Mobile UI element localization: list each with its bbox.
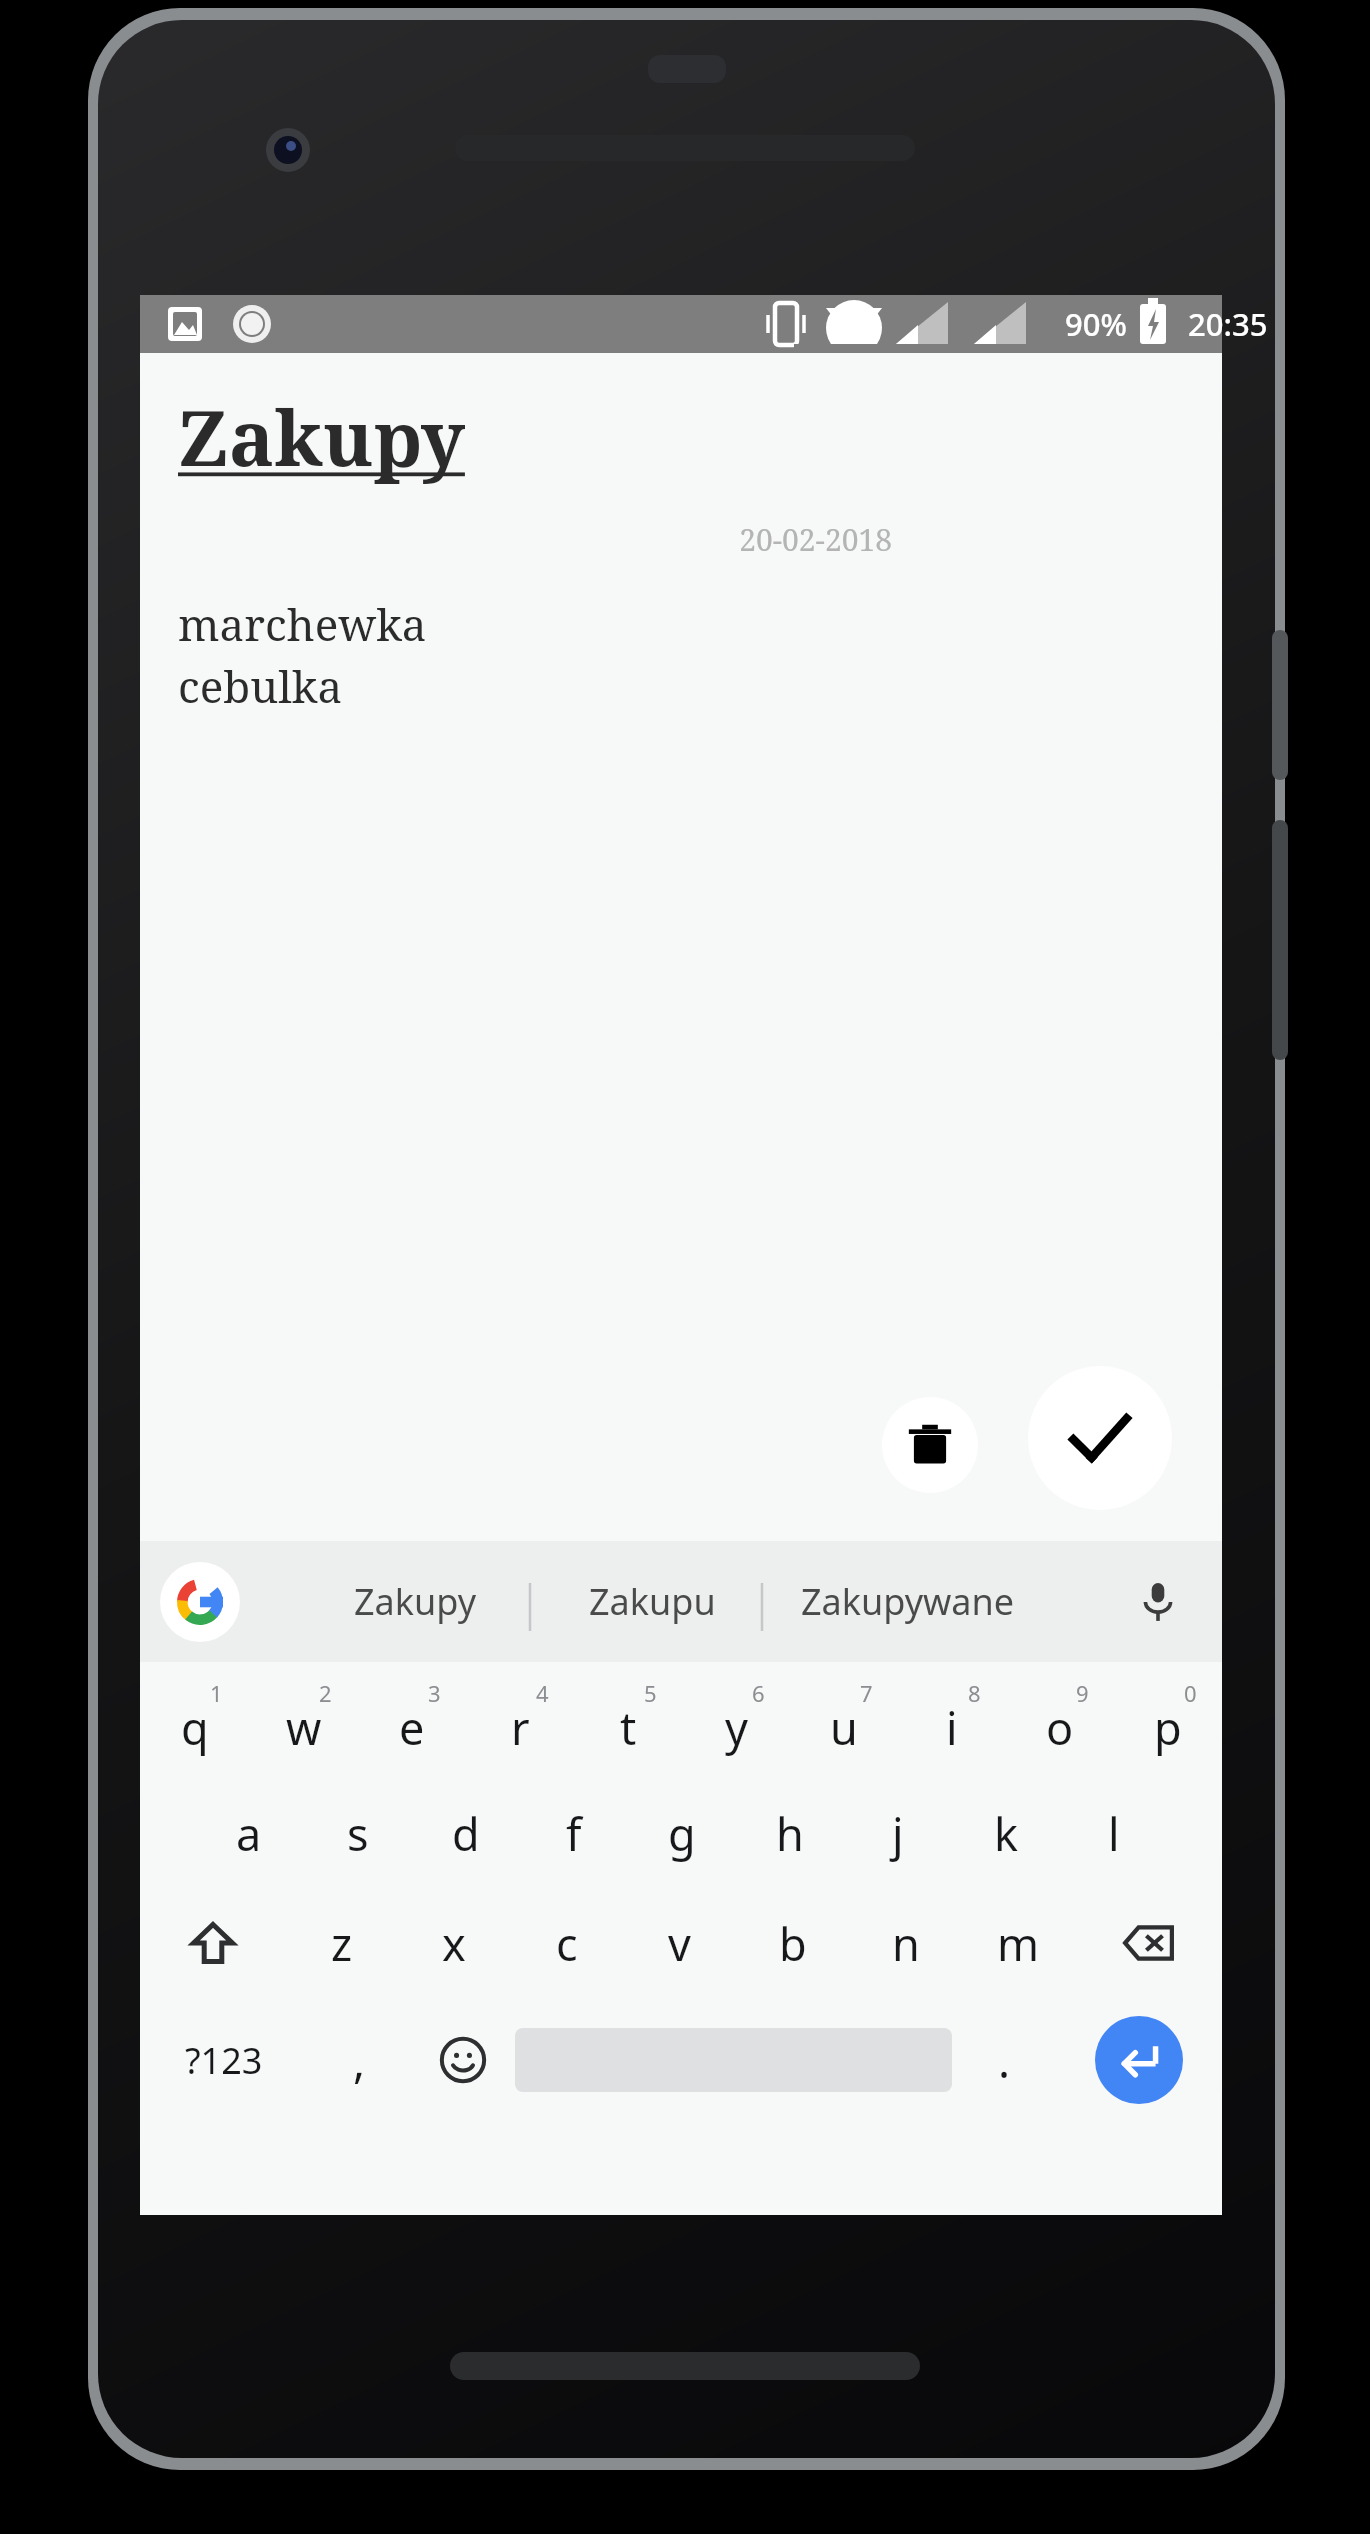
- button[interactable]: .: [952, 1998, 1056, 2122]
- button[interactable]: s: [303, 1778, 412, 1888]
- staticText: v: [668, 1913, 691, 1974]
- staticText: ,: [353, 2030, 366, 2091]
- staticText: 8: [968, 1678, 981, 1708]
- button[interactable]: Backspace: [1075, 1888, 1222, 1998]
- staticText: 5: [644, 1678, 657, 1708]
- staticText: h: [776, 1803, 804, 1864]
- staticText: ?123: [185, 2036, 263, 2085]
- staticText: Zakupywane: [801, 1577, 1015, 1626]
- staticText: y: [725, 1697, 748, 1758]
- staticText: 9: [1076, 1678, 1089, 1708]
- staticText: o: [1046, 1697, 1074, 1758]
- button[interactable]: y: [682, 1668, 790, 1778]
- staticText: d: [452, 1803, 480, 1864]
- staticText: 6: [752, 1678, 765, 1708]
- staticText: b: [779, 1913, 807, 1974]
- button[interactable]: Shift: [140, 1888, 286, 1998]
- staticText: l: [1108, 1803, 1120, 1864]
- button[interactable]: h: [736, 1778, 844, 1888]
- staticText: j: [892, 1803, 904, 1864]
- staticText: x: [442, 1913, 466, 1974]
- button[interactable]: n: [849, 1888, 962, 1998]
- staticText: f: [566, 1803, 582, 1864]
- button[interactable]: a: [194, 1778, 303, 1888]
- button[interactable]: e: [358, 1668, 466, 1778]
- button[interactable]: Enter: [1095, 2016, 1183, 2104]
- button[interactable]: r: [466, 1668, 574, 1778]
- button[interactable]: j: [844, 1778, 952, 1888]
- staticText: p: [1154, 1697, 1182, 1758]
- button[interactable]: t: [574, 1668, 682, 1778]
- button[interactable]: v: [623, 1888, 736, 1998]
- button[interactable]: d: [412, 1778, 520, 1888]
- button[interactable]: i: [898, 1668, 1006, 1778]
- button[interactable]: c: [510, 1888, 623, 1998]
- staticText: a: [236, 1803, 262, 1864]
- staticText: e: [399, 1697, 425, 1758]
- button[interactable]: z: [286, 1888, 398, 1998]
- staticText: r: [511, 1697, 530, 1758]
- button[interactable]: w: [249, 1668, 358, 1778]
- staticText: 2: [319, 1678, 332, 1708]
- button[interactable]: Google: [160, 1562, 240, 1642]
- staticText: 1: [210, 1678, 223, 1708]
- staticText: 3: [428, 1678, 441, 1708]
- staticText: 7: [860, 1678, 873, 1708]
- staticText: 90%: [1065, 303, 1127, 345]
- button[interactable]: Zakupu: [540, 1541, 765, 1662]
- staticText: q: [181, 1697, 209, 1758]
- button[interactable]: p: [1114, 1668, 1222, 1778]
- button[interactable]: x: [398, 1888, 510, 1998]
- button[interactable]: b: [736, 1888, 849, 1998]
- button[interactable]: f: [520, 1778, 628, 1888]
- button[interactable]: ,: [307, 1998, 411, 2122]
- staticText: m: [997, 1913, 1040, 1974]
- button[interactable]: q: [140, 1668, 249, 1778]
- button[interactable]: l: [1060, 1778, 1168, 1888]
- staticText: n: [892, 1913, 920, 1974]
- button[interactable]: marchewka cebulka: [178, 594, 427, 716]
- staticText: t: [620, 1697, 637, 1758]
- button[interactable]: u: [790, 1668, 898, 1778]
- staticText: z: [331, 1913, 353, 1974]
- staticText: Zakupu: [589, 1577, 716, 1626]
- button[interactable]: Delete: [882, 1397, 978, 1493]
- button[interactable]: g: [628, 1778, 736, 1888]
- button[interactable]: k: [952, 1778, 1060, 1888]
- button[interactable]: Zakupy: [178, 385, 465, 489]
- staticText: Zakupy: [354, 1577, 477, 1626]
- button[interactable]: Save: [1028, 1366, 1172, 1510]
- staticText: w: [286, 1697, 322, 1758]
- staticText: u: [830, 1697, 858, 1758]
- staticText: c: [556, 1913, 578, 1974]
- button[interactable]: ?123: [140, 1998, 307, 2122]
- button[interactable]: Voice input: [1116, 1560, 1200, 1644]
- staticText: s: [347, 1803, 369, 1864]
- staticText: 20-02-2018: [140, 519, 892, 560]
- staticText: i: [946, 1697, 958, 1758]
- button[interactable]: o: [1006, 1668, 1114, 1778]
- staticText: k: [994, 1803, 1019, 1864]
- button[interactable]: m: [962, 1888, 1075, 1998]
- staticText: .: [998, 2030, 1011, 2091]
- button[interactable]: Emoji: [411, 1998, 515, 2122]
- button[interactable]: Zakupy: [300, 1541, 530, 1662]
- staticText: 20:35: [1188, 303, 1268, 345]
- button[interactable]: Zakupywane: [768, 1541, 1048, 1662]
- staticText: 0: [1184, 1678, 1197, 1708]
- staticText: 4: [536, 1678, 549, 1708]
- staticText: g: [668, 1803, 696, 1864]
